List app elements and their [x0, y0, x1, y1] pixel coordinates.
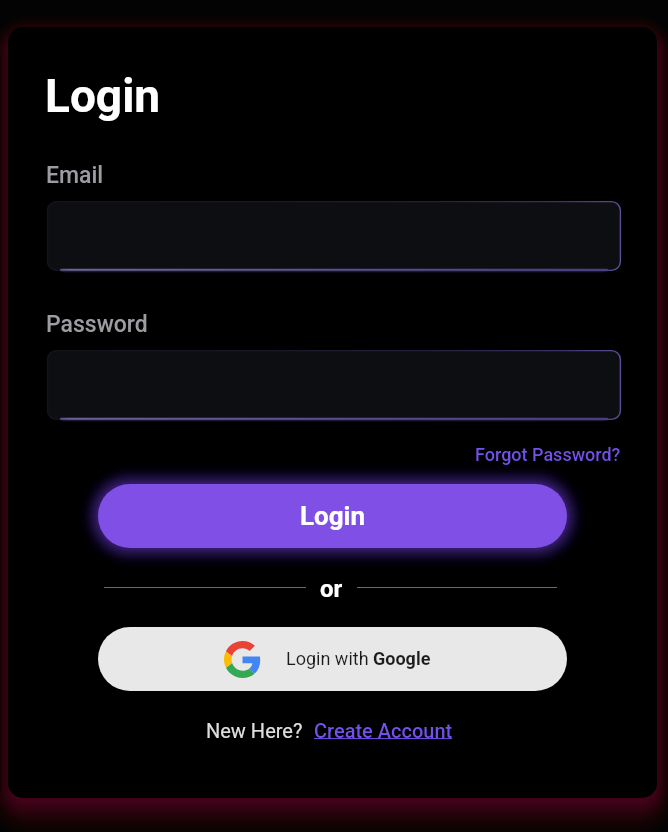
staticText: New Here? [206, 719, 303, 742]
other: Google logo [224, 641, 261, 678]
staticText: Login [45, 69, 161, 123]
staticText: Login with Google [286, 648, 431, 669]
button[interactable]: Create Account [314, 719, 453, 742]
staticText: or [320, 575, 343, 601]
staticText: Email [46, 162, 104, 189]
button[interactable]: Login [98, 484, 567, 548]
staticText: Password [46, 311, 148, 338]
button[interactable] [47, 193, 621, 279]
button[interactable] [47, 342, 621, 428]
button[interactable]: Google logo [98, 627, 567, 691]
button[interactable]: Forgot Password? [475, 444, 621, 465]
staticText: Login [300, 501, 366, 531]
